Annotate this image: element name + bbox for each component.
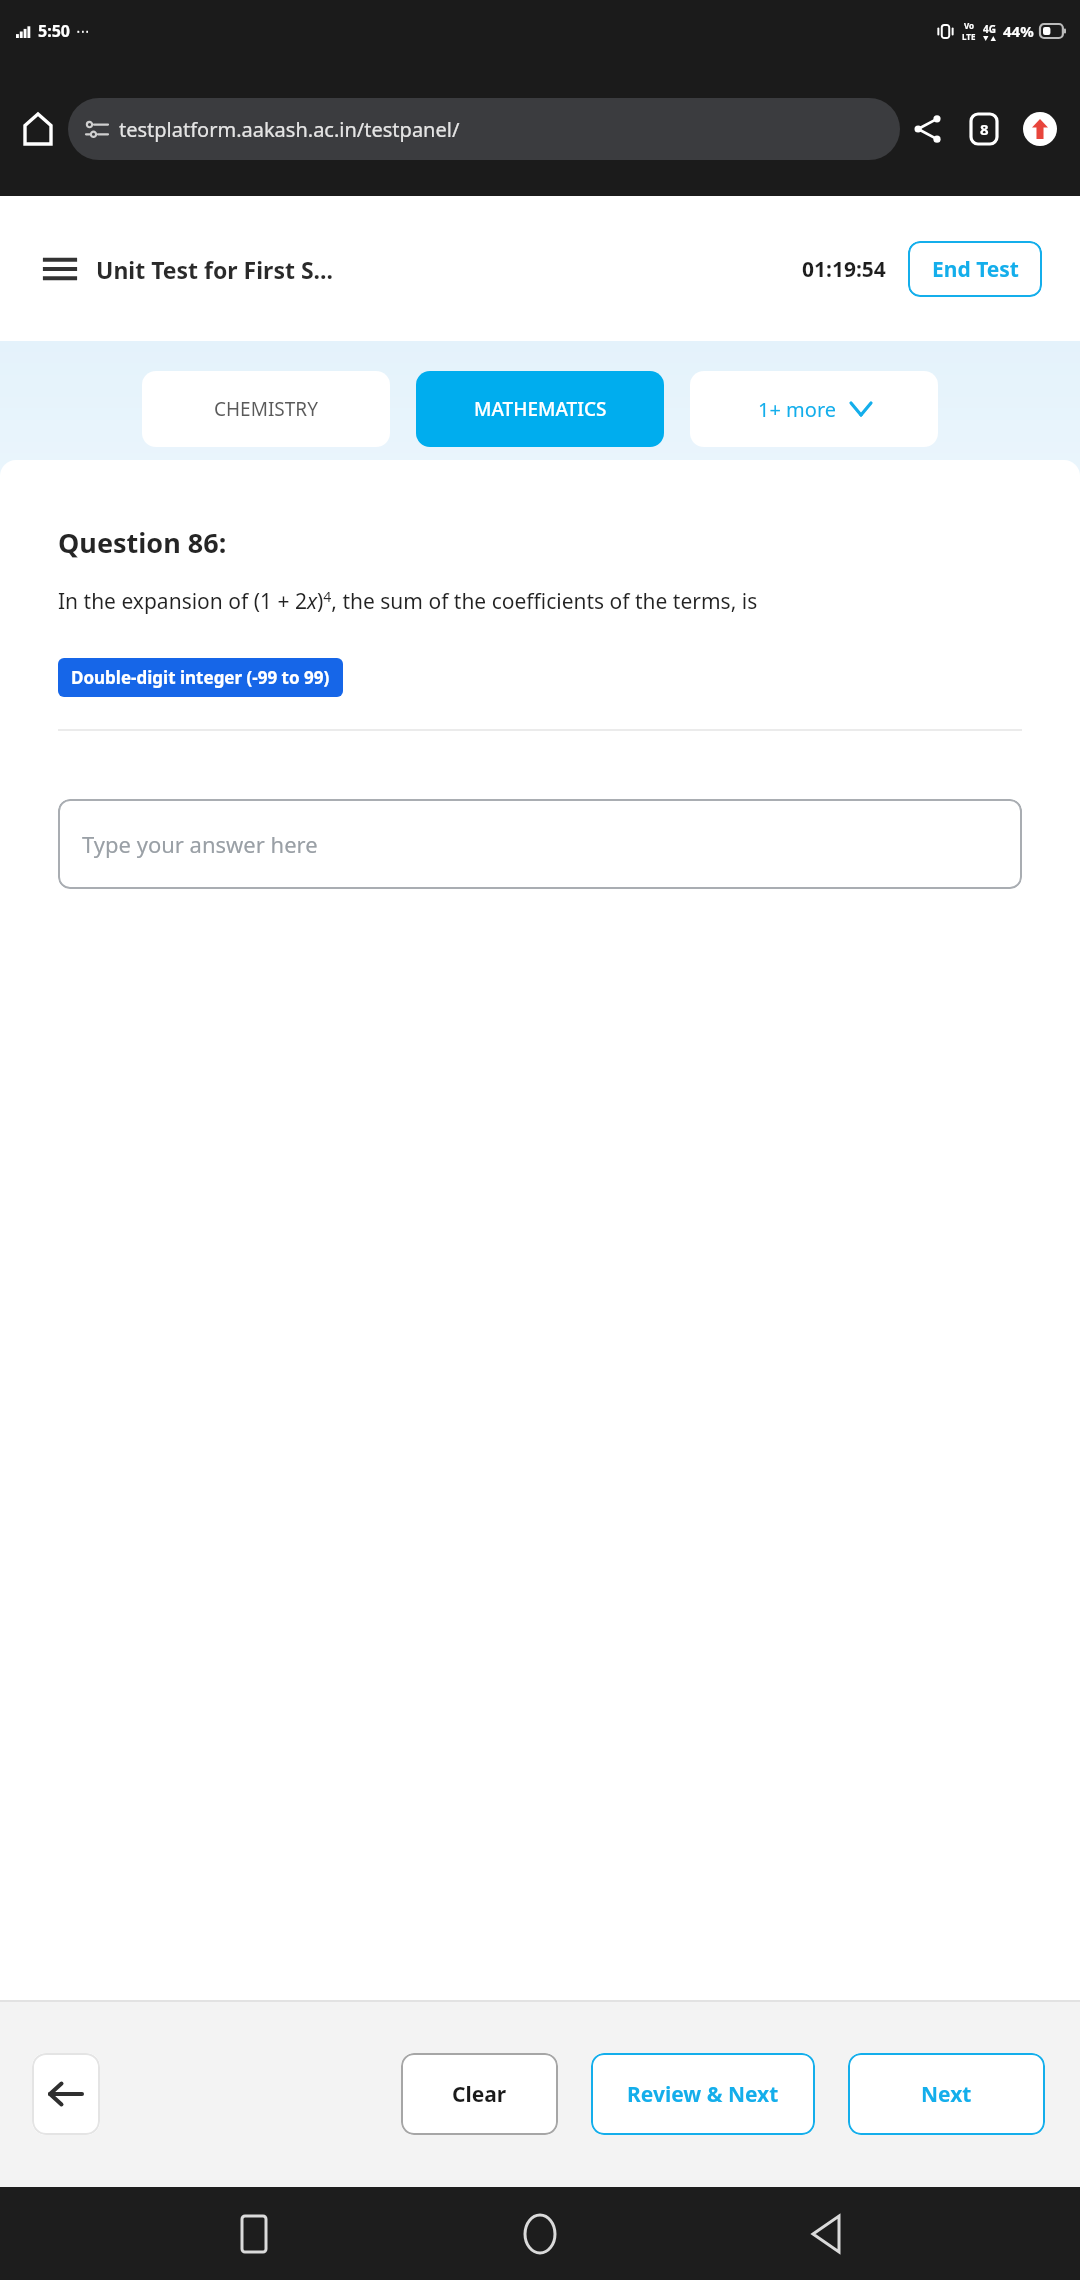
staticText: Double-digit integer (-99 to 99): [71, 666, 330, 689]
button[interactable]: Recents: [222, 2202, 286, 2266]
staticText: 4G: [983, 22, 996, 36]
button[interactable]: Previous: [32, 2053, 100, 2135]
staticText: 01:19:54: [802, 255, 886, 284]
button[interactable]: testplatform.aakash.ac.in/testpanel/: [68, 98, 900, 160]
staticText: End Test: [932, 255, 1019, 284]
button[interactable]: Share: [900, 101, 956, 157]
button[interactable]: Tabs: [956, 101, 1012, 157]
staticText: Question 86:: [58, 524, 227, 561]
button[interactable]: End Test: [908, 241, 1042, 297]
button[interactable]: Clear: [401, 2053, 558, 2135]
button[interactable]: Review & Next: [591, 2053, 815, 2135]
staticText: testplatform.aakash.ac.in/testpanel/: [119, 116, 460, 143]
staticText: ⋯: [76, 23, 90, 39]
staticText: 44%: [1003, 21, 1034, 41]
staticText: 5:50: [38, 20, 70, 42]
staticText: LTE: [962, 31, 976, 42]
button[interactable]: CHEMISTRY: [142, 371, 390, 447]
staticText: Vo: [964, 20, 975, 31]
staticText: 1+ more: [758, 396, 837, 423]
staticText: Next: [921, 2080, 972, 2109]
button[interactable]: Back: [794, 2202, 858, 2266]
staticText: 8: [980, 119, 989, 139]
button[interactable]: Next: [848, 2053, 1045, 2135]
button[interactable]: Home: [508, 2202, 572, 2266]
button[interactable]: MATHEMATICS: [416, 371, 664, 447]
staticText: Clear: [452, 2080, 507, 2109]
staticText: Type your answer here: [82, 829, 318, 859]
staticText: In the expansion of (1 + 2x)4, the sum o…: [58, 587, 758, 616]
button[interactable]: 1+ more: [690, 371, 938, 447]
button[interactable]: Update: [1012, 101, 1068, 157]
staticText: Review & Next: [627, 2080, 779, 2109]
button[interactable]: Home: [12, 103, 64, 155]
staticText: CHEMISTRY: [214, 396, 318, 422]
button[interactable]: Menu: [38, 247, 82, 291]
staticText: MATHEMATICS: [474, 396, 607, 422]
staticText: Unit Test for First S...: [96, 254, 333, 285]
button[interactable]: Type your answer here: [58, 799, 1022, 889]
